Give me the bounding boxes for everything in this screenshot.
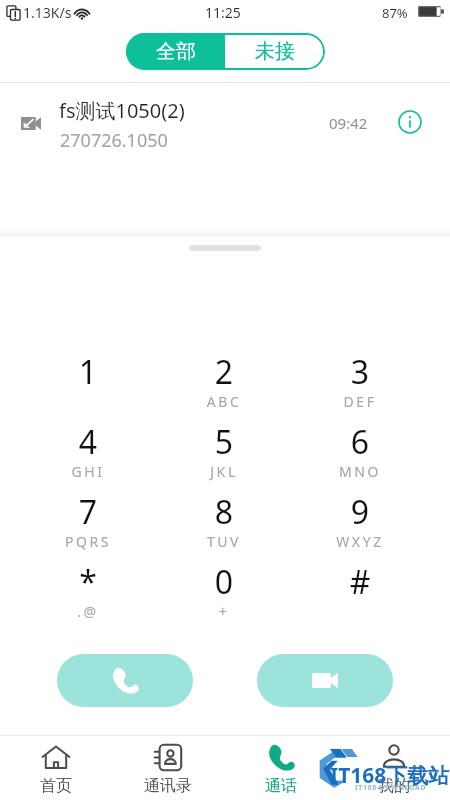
button[interactable]: Call details [394,106,426,138]
staticText: 7 [33,490,143,534]
staticText: 4 [33,420,143,464]
staticText: 87% [382,4,408,22]
button[interactable]: 4 [33,411,143,481]
staticText: IT168 DOWNLOAD [355,783,427,793]
staticText: JKL [169,462,279,481]
staticText: 1.13K/s [23,3,72,22]
button[interactable]: * [33,551,143,621]
button[interactable]: 0 [169,551,279,621]
button[interactable]: 2 [169,341,279,411]
staticText: 270726.1050 [60,128,168,153]
button[interactable]: 6 [305,411,415,481]
staticText: 2 [169,350,279,394]
staticText: 通讯录 [144,776,192,796]
button[interactable]: 首页 [0,736,112,800]
button[interactable]: 通话 [224,736,337,800]
button[interactable]: 3 [305,341,415,411]
staticText: 0 [169,560,279,604]
staticText: 全部 [156,39,196,64]
staticText: TUV [169,532,279,551]
staticText: 未接 [255,39,295,64]
staticText: 3 [305,350,415,394]
staticText: WXYZ [305,532,415,551]
staticText: 1 [33,350,143,394]
button[interactable]: Voice call [57,654,193,707]
staticText: MNO [305,462,415,481]
button[interactable]: 未接 [225,33,325,70]
staticText: * [33,560,143,604]
staticText: 5 [169,420,279,464]
button[interactable]: Video call [257,654,393,707]
staticText: IT168下载站 [330,761,450,790]
button[interactable]: 5 [169,411,279,481]
staticText: fs测试1050(2) [59,97,185,124]
button[interactable]: 全部 [126,33,225,70]
staticText: .@ [33,602,143,621]
button[interactable]: # [305,551,415,621]
button[interactable]: 我的 [337,736,450,800]
staticText: 09:42 [329,113,368,133]
staticText: GHI [33,462,143,481]
staticText: 通话 [265,776,297,796]
button[interactable]: 1 [33,341,143,411]
button[interactable]: 通讯录 [112,736,224,800]
button[interactable]: 8 [169,481,279,551]
staticText: DEF [305,392,415,411]
staticText: ABC [169,392,279,411]
button[interactable]: 7 [33,481,143,551]
staticText: 首页 [40,776,72,796]
staticText: # [305,560,415,604]
button[interactable]: fs测试1050(2) [0,83,450,159]
staticText: 我的 [378,776,410,796]
button[interactable]: 9 [305,481,415,551]
staticText: 6 [305,420,415,464]
staticText: PQRS [33,532,143,551]
staticText: 11:25 [205,3,241,22]
staticText: + [169,602,279,621]
staticText: 9 [305,490,415,534]
staticText: 8 [169,490,279,534]
